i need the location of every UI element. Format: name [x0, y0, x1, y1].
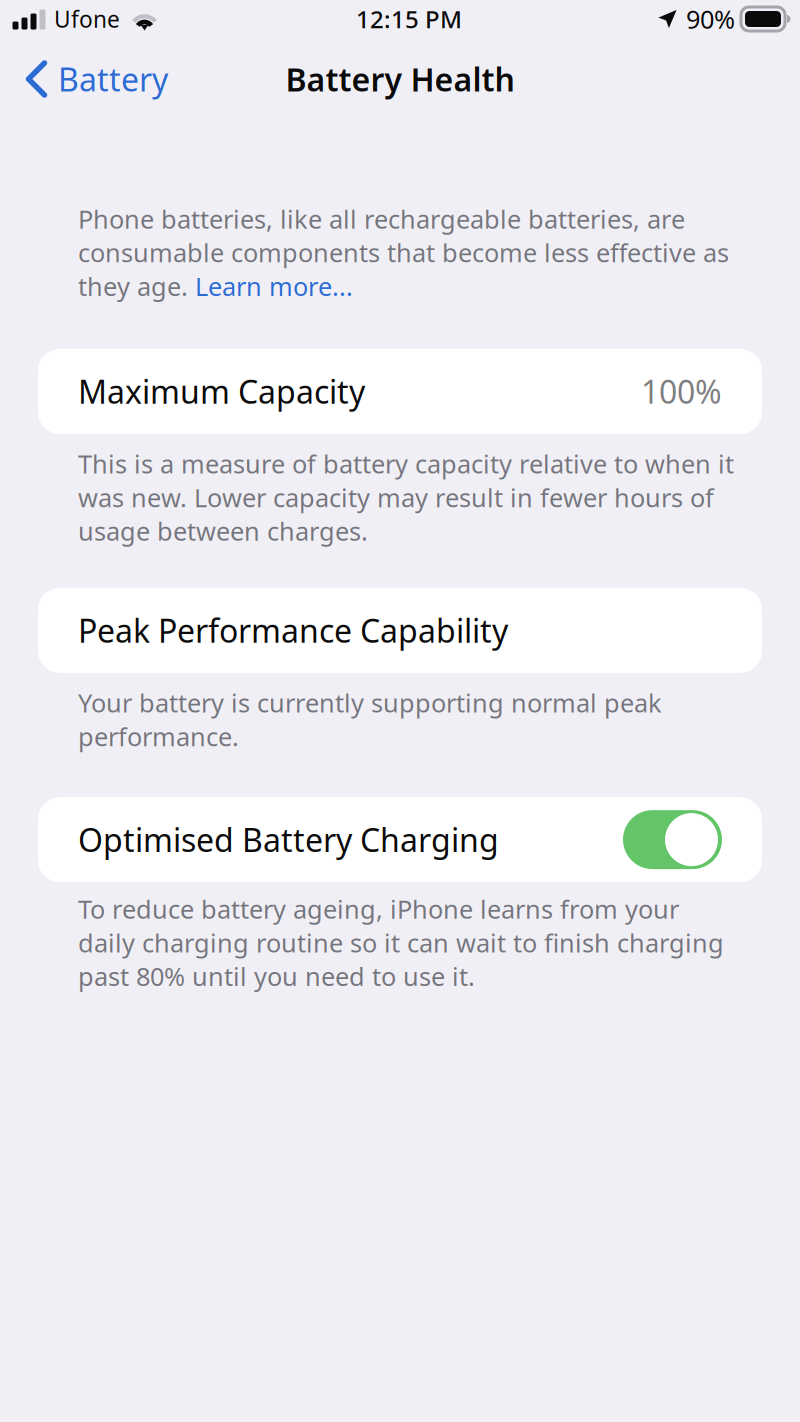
staticText: 12:15 PM — [356, 3, 462, 35]
staticText: To reduce battery ageing, iPhone learns … — [78, 892, 679, 926]
staticText: consumable components that become less e… — [78, 236, 729, 269]
staticText: Maximum Capacity — [78, 370, 365, 413]
button[interactable]: Battery — [0, 40, 180, 106]
staticText: Ufone — [54, 4, 120, 34]
button[interactable]: Peak Performance Capability — [38, 588, 762, 673]
staticText: Phone batteries, like all rechargeable b… — [78, 202, 685, 236]
staticText: daily charging routine so it can wait to… — [78, 926, 724, 959]
staticText: 100% — [641, 370, 722, 413]
button[interactable]: Optimised Battery Charging — [623, 810, 722, 869]
button[interactable]: Maximum Capacity — [38, 349, 762, 434]
staticText: Your battery is currently supporting nor… — [78, 686, 662, 719]
staticText: usage between charges. — [78, 514, 368, 548]
staticText: Learn more... — [195, 269, 353, 303]
staticText: Battery Health — [285, 58, 514, 100]
staticText: performance. — [78, 719, 239, 753]
staticText: was new. Lower capacity may result in fe… — [78, 481, 714, 514]
staticText: past 80% until you need to use it. — [78, 959, 475, 993]
staticText: Battery — [58, 58, 168, 100]
button[interactable]: Learn more... — [195, 269, 353, 303]
staticText: 90% — [686, 2, 735, 36]
staticText: This is a measure of battery capacity re… — [78, 447, 734, 480]
staticText: Peak Performance Capability — [78, 609, 508, 652]
staticText: they age. — [78, 269, 195, 303]
staticText: Optimised Battery Charging — [78, 818, 499, 861]
